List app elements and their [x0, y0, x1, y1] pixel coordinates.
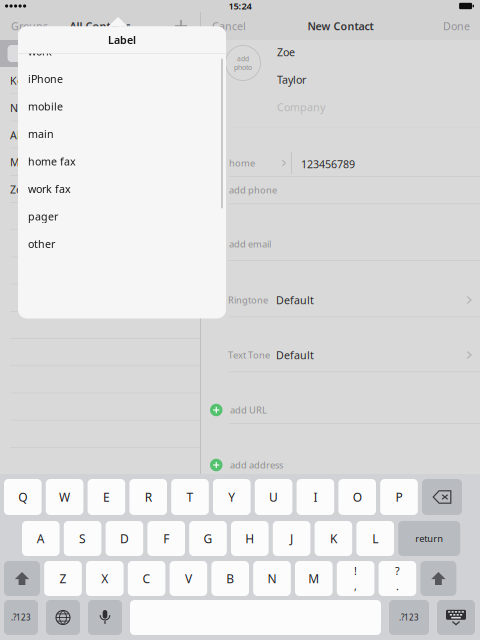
- button[interactable]: !: [337, 561, 374, 596]
- button[interactable]: E: [88, 479, 125, 515]
- staticText: photo: [234, 63, 252, 72]
- button[interactable]: iPhone: [18, 65, 226, 92]
- button[interactable]: F: [147, 521, 185, 556]
- button[interactable]: work fax: [18, 175, 226, 202]
- button[interactable]: Cancel: [207, 14, 251, 38]
- button[interactable]: Zo: [0, 176, 200, 203]
- button[interactable]: X: [86, 561, 124, 596]
- button[interactable]: work: [18, 37, 226, 65]
- button[interactable]: ?: [379, 561, 416, 596]
- button[interactable]: Hide keyboard: [437, 600, 475, 635]
- button[interactable]: home fax: [18, 147, 226, 175]
- button[interactable]: .?123: [4, 600, 38, 635]
- button[interactable]: J: [273, 521, 310, 556]
- button[interactable]: [0, 475, 200, 502]
- button[interactable]: Text Tone: [228, 341, 473, 368]
- staticText: All Contacts: [69, 19, 130, 33]
- button[interactable]: A: [22, 521, 60, 556]
- button[interactable]: [0, 502, 200, 529]
- button[interactable]: P: [380, 479, 418, 515]
- staticText: R: [145, 489, 152, 505]
- button[interactable]: Ke: [0, 67, 200, 94]
- button[interactable]: Y: [213, 479, 251, 515]
- button[interactable]: [0, 203, 200, 230]
- button[interactable]: add address: [210, 452, 475, 478]
- staticText: Groups: [11, 19, 48, 33]
- staticText: other: [28, 237, 55, 251]
- button[interactable]: K: [315, 521, 352, 556]
- button[interactable]: S: [64, 521, 101, 556]
- button[interactable]: [0, 557, 200, 584]
- button[interactable]: D: [106, 521, 143, 556]
- staticText: Cancel: [212, 19, 246, 33]
- button[interactable]: main: [18, 120, 226, 147]
- staticText: M: [308, 570, 319, 586]
- button[interactable]: Q: [4, 479, 42, 515]
- button[interactable]: [0, 285, 200, 312]
- staticText: add address: [230, 459, 283, 471]
- button[interactable]: C: [128, 561, 165, 596]
- button[interactable]: I: [297, 479, 334, 515]
- button[interactable]: Ma: [0, 149, 200, 176]
- button[interactable]: M: [295, 561, 333, 596]
- staticText: iPhone: [28, 72, 63, 86]
- button[interactable]: add URL: [210, 397, 475, 423]
- staticText: Default: [276, 348, 314, 362]
- button[interactable]: Shift: [420, 561, 456, 596]
- button[interactable]: R: [129, 479, 167, 515]
- button[interactable]: Ringtone: [228, 286, 473, 313]
- button[interactable]: G: [189, 521, 227, 556]
- button[interactable]: Z: [44, 561, 82, 596]
- button[interactable]: [0, 257, 200, 285]
- button[interactable]: add phone: [229, 177, 478, 203]
- button[interactable]: Add contact: [168, 14, 194, 38]
- button[interactable]: [0, 611, 200, 638]
- button[interactable]: Ni: [0, 94, 200, 121]
- button[interactable]: home: [229, 150, 292, 176]
- button[interactable]: Al: [0, 121, 200, 149]
- staticText: Done: [443, 19, 470, 33]
- button[interactable]: [0, 529, 200, 557]
- button[interactable]: Groups: [6, 14, 53, 38]
- staticText: Default: [276, 293, 314, 307]
- button[interactable]: pager: [18, 202, 226, 230]
- button[interactable]: V: [170, 561, 207, 596]
- button[interactable]: Next keyboard: [46, 600, 80, 635]
- staticText: 15:24: [228, 0, 251, 12]
- button[interactable]: Dictation: [88, 600, 122, 635]
- button[interactable]: [0, 312, 200, 339]
- button[interactable]: [0, 230, 200, 257]
- button[interactable]: mobile: [18, 92, 226, 120]
- button[interactable]: other: [18, 230, 226, 257]
- button[interactable]: T: [171, 479, 209, 515]
- button[interactable]: B: [211, 561, 249, 596]
- staticText: work: [28, 44, 52, 58]
- button[interactable]: add email: [229, 231, 478, 257]
- button[interactable]: L: [356, 521, 394, 556]
- staticText: V: [185, 570, 192, 586]
- button[interactable]: W: [46, 479, 83, 515]
- staticText: J: [290, 530, 293, 546]
- button[interactable]: Done: [438, 14, 475, 38]
- staticText: Ma: [10, 155, 26, 169]
- button[interactable]: N: [253, 561, 291, 596]
- button[interactable]: U: [255, 479, 292, 515]
- staticText: Ke: [10, 73, 23, 88]
- staticText: I: [313, 489, 317, 505]
- button[interactable]: Delete: [422, 479, 462, 515]
- button[interactable]: return: [398, 521, 460, 556]
- button[interactable]: Shift: [4, 561, 40, 596]
- staticText: L: [372, 530, 378, 546]
- staticText: .?123: [11, 612, 31, 623]
- button[interactable]: .?123: [389, 600, 429, 635]
- button[interactable]: O: [338, 479, 376, 515]
- button[interactable]: H: [231, 521, 269, 556]
- button[interactable]: [0, 584, 200, 611]
- staticText: Ringtone: [228, 294, 268, 306]
